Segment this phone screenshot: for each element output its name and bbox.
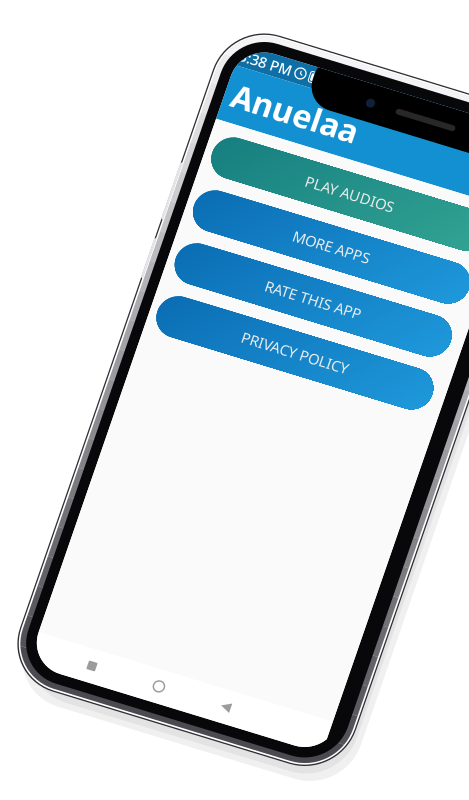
button[interactable]: RATE THIS APP [26,222,313,264]
button[interactable]: MORE APPS [26,166,313,208]
staticText: PLAY AUDIOS [124,121,216,141]
staticText: MORE APPS [130,177,210,197]
button[interactable]: Recent apps [57,643,103,673]
staticText: PRIVACY POLICY [114,289,225,309]
button[interactable]: PRIVACY POLICY [26,278,313,320]
staticText: RATE THIS APP [120,233,220,253]
button[interactable]: PLAY AUDIOS [26,110,313,152]
